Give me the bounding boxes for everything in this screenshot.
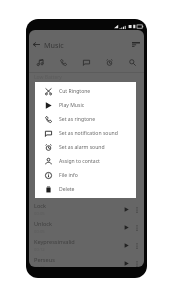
button[interactable]: Unlock [29, 218, 144, 236]
button[interactable]: Play [121, 255, 132, 267]
staticText: Assign to contact [59, 158, 100, 165]
staticText: Cut Ringtone [59, 88, 91, 95]
staticText: Perseus [34, 256, 55, 264]
staticText: Play Music [59, 102, 85, 109]
button[interactable]: More options [132, 255, 142, 267]
button[interactable]: File info [35, 168, 136, 182]
button[interactable]: Cut Ringtone [35, 84, 136, 98]
button[interactable]: Set as ringtone [35, 112, 136, 126]
button[interactable]: Notifications tab [75, 55, 98, 69]
button[interactable]: Alarms tab [98, 55, 121, 69]
button[interactable]: Set as alarm sound [35, 140, 136, 154]
button[interactable]: Delete [35, 182, 136, 196]
button[interactable]: Ringtones tab [52, 55, 75, 69]
staticText: Unlock [34, 220, 53, 228]
button[interactable]: Assign to contact [35, 154, 136, 168]
button[interactable]: Set as notification sound [35, 126, 136, 140]
button[interactable]: Sort [127, 34, 144, 55]
staticText: Set as ringtone [59, 116, 96, 123]
button[interactable]: Back [29, 34, 44, 55]
button[interactable]: Search [121, 55, 144, 69]
button[interactable]: Keypressinvalid [29, 236, 144, 254]
staticText: Lock [34, 202, 46, 210]
button[interactable]: Play Music [35, 98, 136, 112]
button[interactable]: Music tab [29, 55, 52, 69]
button[interactable]: More options [132, 237, 142, 254]
button[interactable]: Play [121, 237, 132, 254]
staticText: Set as alarm sound [59, 144, 105, 151]
button[interactable]: Lock [29, 200, 144, 218]
staticText: Delete [59, 186, 75, 193]
button[interactable]: More options [132, 201, 142, 218]
button[interactable]: Play [121, 201, 132, 218]
button[interactable]: Perseus [29, 254, 144, 267]
staticText: Keypressinvalid [34, 238, 75, 246]
button[interactable]: More options [132, 219, 142, 236]
staticText: File info [59, 172, 78, 179]
button[interactable]: Play [121, 219, 132, 236]
staticText: Set as notification sound [59, 130, 118, 137]
staticText: Music [44, 40, 64, 50]
